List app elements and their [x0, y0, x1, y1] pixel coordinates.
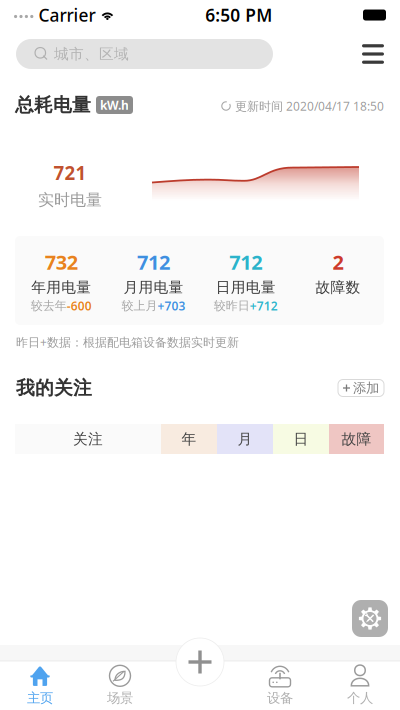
button[interactable]: Settings	[352, 600, 388, 637]
staticText: 主页	[27, 690, 53, 706]
staticText: 故障数	[315, 278, 360, 296]
staticText: 城市、区域	[54, 45, 129, 63]
staticText: 日用电量	[216, 278, 276, 296]
staticText: -600	[67, 298, 92, 314]
staticText: +703	[157, 298, 185, 314]
button[interactable]: 添加	[338, 379, 384, 396]
staticText: 个人	[347, 690, 373, 706]
button[interactable]: Add	[178, 640, 222, 684]
staticText: +712	[250, 298, 278, 314]
button[interactable]: 场景	[80, 661, 160, 710]
button[interactable]: 设备	[240, 661, 320, 710]
staticText: 较昨日	[214, 298, 250, 313]
staticText: 年	[181, 430, 196, 448]
staticText: 设备	[267, 690, 293, 706]
staticText: 较上月	[121, 298, 157, 313]
staticText: 732	[45, 249, 78, 275]
staticText: 2	[332, 249, 343, 275]
staticText: 添加	[353, 380, 379, 396]
staticText: 实时电量	[38, 190, 102, 210]
staticText: 年用电量	[31, 278, 91, 296]
button[interactable]: Menu	[353, 34, 393, 74]
staticText: 昨日+数据：根据配电箱设备数据实时更新	[16, 334, 239, 350]
staticText: 总耗电量	[15, 93, 91, 116]
staticText: 712	[229, 249, 262, 275]
staticText: 6:50 PM	[205, 3, 272, 26]
staticText: 721	[53, 160, 86, 185]
staticText: 场景	[107, 690, 133, 706]
staticText: 关注	[73, 430, 103, 448]
staticText: 月用电量	[123, 278, 183, 296]
staticText: 月	[237, 430, 252, 448]
button[interactable]: 主页	[0, 661, 80, 710]
staticText: 我的关注	[16, 376, 92, 399]
staticText: Carrier	[38, 3, 95, 26]
staticText: 日	[293, 430, 308, 448]
staticText: 更新时间 2020/04/17 18:50	[235, 98, 384, 114]
staticText: 较去年	[31, 298, 67, 313]
staticText: 故障	[341, 430, 371, 448]
button[interactable]: 城市、区域	[16, 39, 273, 69]
staticText: 712	[137, 249, 170, 275]
button[interactable]: 个人	[320, 661, 400, 710]
staticText: kW.h	[100, 97, 129, 113]
